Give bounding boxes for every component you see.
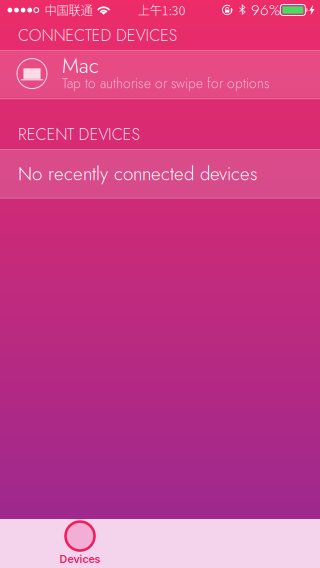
staticText: 96% xyxy=(251,0,280,21)
staticText: 上午1:30 xyxy=(138,1,186,19)
staticText: Tap to authorise or swipe for options xyxy=(62,74,270,93)
button[interactable]: Mac xyxy=(0,51,320,99)
staticText: No recently connected devices xyxy=(18,160,258,187)
staticText: RECENT DEVICES xyxy=(18,123,140,146)
staticText: CONNECTED DEVICES xyxy=(18,23,178,47)
staticText: Mac xyxy=(62,51,99,81)
staticText: Devices xyxy=(59,552,100,565)
button[interactable]: Devices xyxy=(0,519,160,568)
staticText: 中国联通 xyxy=(44,1,92,19)
